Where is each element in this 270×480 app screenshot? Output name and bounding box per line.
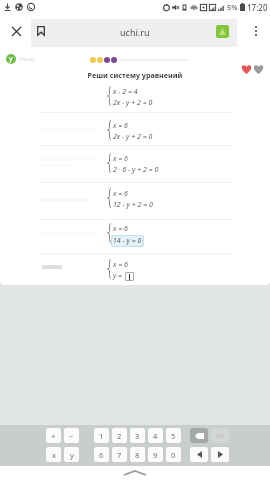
staticText: Реши систему уравнений	[0, 70, 270, 80]
button[interactable]: 5	[166, 428, 181, 443]
button[interactable]: 7	[112, 447, 127, 462]
staticText: 17:20	[247, 2, 268, 13]
staticText: 5%	[227, 2, 238, 12]
staticText: y	[9, 54, 13, 64]
staticText: y =	[113, 271, 123, 281]
staticText: +	[51, 431, 56, 441]
staticText: x = 6	[113, 224, 128, 234]
button[interactable]: x	[46, 447, 61, 462]
button[interactable]: −	[64, 428, 79, 443]
staticText: 4	[153, 431, 158, 441]
staticText: x = 6	[113, 260, 128, 270]
staticText: uchi.ru	[120, 26, 150, 38]
staticText: 2x − y + 2 = 0	[113, 98, 153, 108]
staticText: 7	[117, 450, 122, 460]
button[interactable]: y	[64, 447, 79, 462]
staticText: 1	[99, 431, 104, 441]
button[interactable]: Open app	[216, 25, 229, 38]
staticText: x = 6	[113, 189, 128, 199]
button[interactable]: Bookmark	[33, 23, 49, 39]
staticText: x	[52, 450, 56, 460]
button[interactable]: Move right	[211, 447, 229, 462]
staticText: 2	[117, 431, 122, 441]
staticText: Учи.ру	[19, 56, 35, 63]
button[interactable]: 8	[130, 447, 145, 462]
button[interactable]: 4	[148, 428, 163, 443]
button[interactable]: 2	[112, 428, 127, 443]
button[interactable]: 6	[94, 447, 109, 462]
staticText: 5	[171, 431, 176, 441]
button[interactable]: 1	[94, 428, 109, 443]
staticText: y	[70, 450, 74, 460]
button[interactable]: 0	[166, 447, 181, 462]
button[interactable]: 3	[130, 428, 145, 443]
staticText: OK	[216, 432, 225, 440]
button[interactable]: Move left	[190, 447, 208, 462]
staticText: 9	[153, 450, 158, 460]
button[interactable]: +	[46, 428, 61, 443]
staticText: 6	[99, 450, 104, 460]
staticText: 3	[135, 431, 140, 441]
staticText: 12 − y + 2 = 0	[113, 200, 153, 210]
staticText: x = 6	[113, 154, 128, 164]
button[interactable]: 9	[148, 447, 163, 462]
button[interactable]: OK	[211, 428, 229, 443]
staticText: 2 · 6 − y + 2 = 0	[113, 165, 159, 175]
staticText: x − 2 = 4	[113, 87, 138, 97]
staticText: 0	[171, 450, 176, 460]
staticText: x = 6	[113, 121, 128, 131]
button[interactable]: Close	[8, 23, 24, 39]
staticText: 2x − y + 2 = 0	[113, 132, 153, 142]
staticText: −	[69, 431, 74, 441]
button[interactable]: Backspace	[190, 428, 208, 443]
staticText: 8	[135, 450, 140, 460]
button[interactable]: More options	[248, 23, 264, 39]
staticText: 14 − y = 0	[113, 236, 142, 246]
